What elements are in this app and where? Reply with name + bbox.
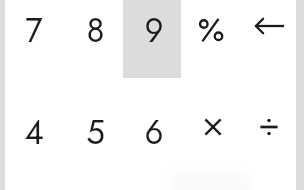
staticText: 8	[86, 7, 105, 55]
button[interactable]: Backspace	[241, 0, 299, 75]
button[interactable]: Divide	[240, 78, 298, 176]
button[interactable]: 8	[66, 0, 124, 80]
button[interactable]: 6	[125, 84, 183, 182]
button[interactable]: 4	[5, 84, 63, 182]
button[interactable]: Percent	[182, 0, 240, 79]
staticText: 9	[144, 7, 164, 55]
button[interactable]: Multiply	[184, 78, 242, 176]
staticText: 5	[86, 109, 105, 157]
staticText: 6	[144, 109, 164, 157]
button[interactable]: 7	[5, 0, 63, 80]
button[interactable]: 9	[125, 0, 183, 80]
staticText: 7	[25, 7, 43, 55]
staticText: 4	[24, 109, 44, 157]
button[interactable]: 5	[66, 84, 124, 182]
